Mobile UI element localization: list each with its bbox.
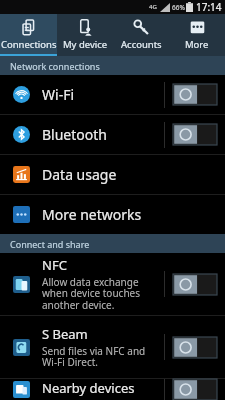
- staticText: Allow data exchange when device touches …: [42, 275, 160, 312]
- button[interactable]: Toggle: [173, 124, 217, 145]
- staticText: Network connections: [10, 60, 100, 72]
- staticText: 17:14: [196, 0, 222, 14]
- staticText: Wi-Fi: [42, 85, 164, 104]
- button[interactable]: Wi-Fi: [0, 75, 225, 114]
- button[interactable]: Accounts: [113, 14, 169, 56]
- button[interactable]: My device: [57, 14, 113, 56]
- staticText: My device: [63, 38, 108, 51]
- button[interactable]: More networks: [0, 195, 225, 234]
- staticText: Data usage: [42, 165, 117, 184]
- staticText: More: [185, 38, 209, 51]
- button[interactable]: More: [169, 14, 225, 56]
- button[interactable]: Toggle: [173, 337, 217, 358]
- staticText: NFC: [42, 256, 67, 274]
- staticText: Connections: [1, 38, 57, 51]
- button[interactable]: Nearby devices: [0, 379, 225, 400]
- staticText: Bluetooth: [42, 125, 164, 144]
- button[interactable]: Toggle: [173, 379, 217, 400]
- staticText: S Beam: [42, 325, 88, 343]
- button[interactable]: Toggle: [173, 84, 217, 105]
- staticText: 4G: [149, 3, 157, 11]
- staticText: Nearby devices: [42, 379, 135, 397]
- staticText: Send files via NFC and Wi-Fi Direct.: [42, 344, 160, 369]
- button[interactable]: NFC: [0, 253, 225, 315]
- button[interactable]: Toggle: [173, 274, 217, 295]
- staticText: 66%: [172, 3, 185, 12]
- button[interactable]: S Beam: [0, 316, 225, 378]
- staticText: More networks: [42, 205, 142, 224]
- staticText: Connect and share: [10, 238, 90, 250]
- staticText: Accounts: [121, 38, 162, 51]
- button[interactable]: Connections: [0, 14, 57, 56]
- button[interactable]: Data usage: [0, 155, 225, 194]
- button[interactable]: Bluetooth: [0, 115, 225, 154]
